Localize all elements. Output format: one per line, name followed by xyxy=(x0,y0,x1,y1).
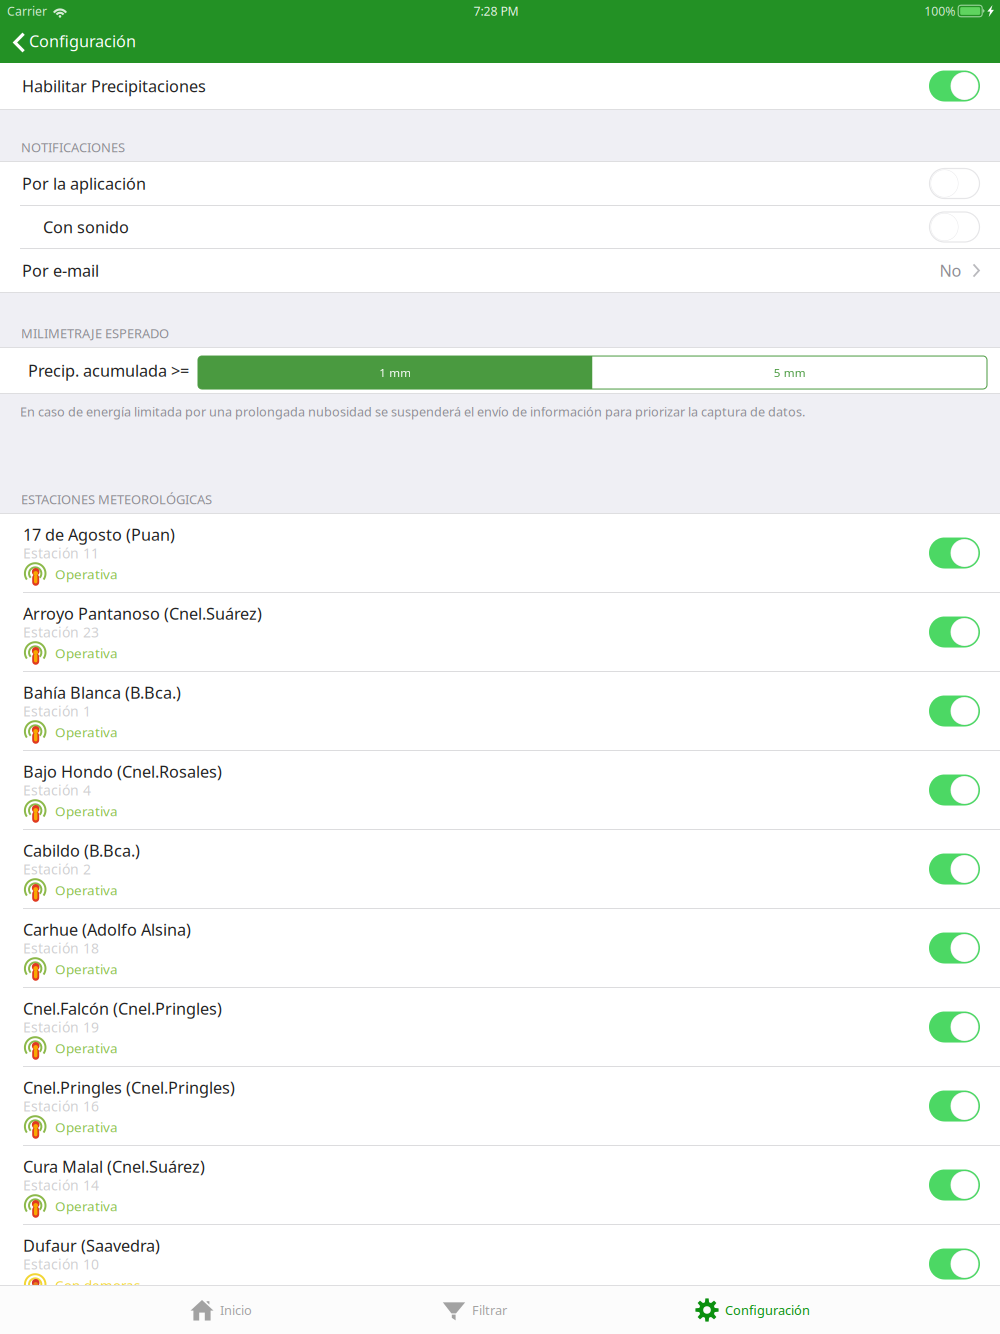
staticText: Cnel.Pringles (Cnel.Pringles) xyxy=(23,1076,235,1099)
staticText: 1 mm xyxy=(379,365,411,380)
button[interactable]: Carhue (Adolfo Alsina) xyxy=(0,909,1000,987)
staticText: Cnel.Falcón (Cnel.Pringles) xyxy=(23,997,222,1020)
staticText: Inicio xyxy=(220,1301,252,1319)
staticText: 5 mm xyxy=(774,365,806,380)
staticText: Estación 19 xyxy=(23,1017,99,1037)
staticText: Estación 16 xyxy=(23,1096,99,1116)
staticText: Operativa xyxy=(55,644,118,662)
staticText: Estación 18 xyxy=(23,938,99,958)
staticText: Estación 23 xyxy=(23,622,99,642)
staticText: Operativa xyxy=(55,1118,118,1136)
staticText: En caso de energía limitada por una prol… xyxy=(20,403,805,420)
staticText: Filtrar xyxy=(472,1301,507,1319)
button[interactable]: Bahía Blanca (B.Bca.) xyxy=(0,672,1000,750)
button[interactable]: Bajo Hondo (Cnel.Rosales) xyxy=(0,751,1000,829)
staticText: Estación 2 xyxy=(23,859,91,879)
staticText: Estación 4 xyxy=(23,780,91,800)
button[interactable]: Filtrar xyxy=(432,1286,517,1334)
staticText: 7:28 PM xyxy=(474,3,519,19)
staticText: Configuración xyxy=(725,1301,810,1319)
staticText: Operativa xyxy=(55,960,118,978)
button[interactable]: Con sonido xyxy=(0,206,1000,248)
staticText: Estación 14 xyxy=(23,1175,99,1195)
button[interactable]: Dufaur (Saavedra) xyxy=(0,1225,1000,1303)
staticText: Precip. acumulada >= xyxy=(28,359,189,382)
staticText: Dufaur (Saavedra) xyxy=(23,1234,160,1257)
staticText: Operativa xyxy=(55,723,118,741)
staticText: Bahía Blanca (B.Bca.) xyxy=(23,681,181,704)
staticText: Estación 11 xyxy=(23,543,99,563)
staticText: Con demoras xyxy=(55,1276,140,1294)
staticText: Carrier xyxy=(7,3,47,19)
staticText: Habilitar Precipitaciones xyxy=(22,75,206,97)
staticText: NOTIFICACIONES xyxy=(21,138,125,156)
staticText: Operativa xyxy=(55,802,118,820)
staticText: 100% xyxy=(924,3,955,19)
button[interactable]: Por e-mail xyxy=(0,249,1000,292)
button[interactable]: Cabildo (B.Bca.) xyxy=(0,830,1000,908)
staticText: Operativa xyxy=(55,1039,118,1057)
staticText: Operativa xyxy=(55,881,118,899)
staticText: Por e-mail xyxy=(22,259,99,282)
button[interactable]: Arroyo Pantanoso (Cnel.Suárez) xyxy=(0,593,1000,671)
staticText: Configuración xyxy=(29,30,136,52)
staticText: Estación 1 xyxy=(23,701,91,721)
staticText: Arroyo Pantanoso (Cnel.Suárez) xyxy=(23,602,262,625)
button[interactable]: Cnel.Falcón (Cnel.Pringles) xyxy=(0,988,1000,1066)
button[interactable]: Por la aplicación xyxy=(0,162,1000,205)
staticText: 17 de Agosto (Puan) xyxy=(23,523,175,546)
staticText: Operativa xyxy=(55,565,118,583)
button[interactable]: Configuración xyxy=(685,1286,820,1334)
staticText: Bajo Hondo (Cnel.Rosales) xyxy=(23,760,222,783)
staticText: Cabildo (B.Bca.) xyxy=(23,839,140,862)
staticText: Operativa xyxy=(55,1197,118,1215)
button[interactable]: Habilitar Precipitaciones xyxy=(0,63,1000,109)
button[interactable]: Back to Configuración xyxy=(0,22,146,63)
staticText: ESTACIONES METEOROLÓGICAS xyxy=(21,490,212,508)
staticText: Con sonido xyxy=(43,216,129,238)
staticText: Cura Malal (Cnel.Suárez) xyxy=(23,1155,205,1178)
staticText: Estación 10 xyxy=(23,1254,99,1274)
button[interactable]: 5 mm xyxy=(592,356,987,389)
button[interactable]: Cura Malal (Cnel.Suárez) xyxy=(0,1146,1000,1224)
button[interactable]: Inicio xyxy=(180,1286,262,1334)
staticText: No xyxy=(940,259,962,282)
button[interactable]: Cnel.Pringles (Cnel.Pringles) xyxy=(0,1067,1000,1145)
staticText: MILIMETRAJE ESPERADO xyxy=(21,324,169,342)
button[interactable]: 1 mm xyxy=(198,356,592,389)
button[interactable]: 17 de Agosto (Puan) xyxy=(0,514,1000,592)
staticText: Carhue (Adolfo Alsina) xyxy=(23,918,191,941)
staticText: Por la aplicación xyxy=(22,172,146,195)
